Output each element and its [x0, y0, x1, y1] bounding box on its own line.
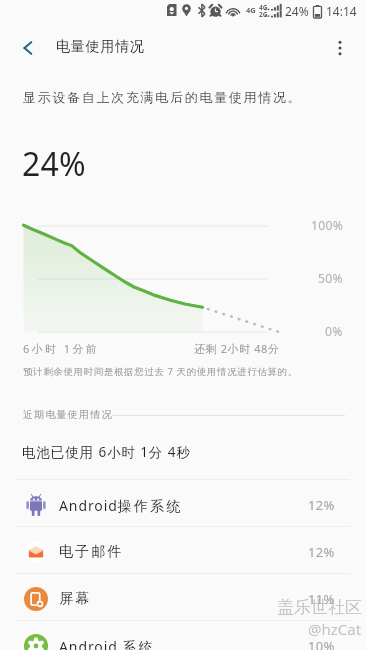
staticText: 11% [308, 590, 335, 608]
staticText: 100% [311, 217, 344, 234]
staticText: 4G [259, 3, 268, 12]
staticText: 0% [325, 323, 343, 340]
staticText: 电子邮件 [59, 543, 124, 561]
staticText: 屏幕 [59, 590, 92, 608]
staticText: 50% [318, 270, 343, 287]
staticText: 24% [285, 3, 309, 19]
button[interactable]: More options [320, 28, 360, 68]
staticText: 4G [246, 5, 256, 15]
button[interactable]: Android操作系统 [0, 480, 366, 526]
staticText: 电量使用情况 [56, 38, 145, 56]
staticText: 预计剩余使用时间是根据您过去 7 天的使用情况进行估算的。 [23, 365, 298, 378]
staticText: 电池已使用 6小时 1分 4秒 [22, 443, 191, 461]
staticText: Android 系统 [59, 637, 155, 650]
button[interactable]: 屏幕 [0, 574, 366, 620]
button[interactable]: Back [8, 28, 48, 68]
staticText: 近期电量使用情况 [23, 408, 113, 421]
staticText: 12% [308, 496, 335, 514]
staticText: 显示设备自上次充满电后的电量使用情况。 [23, 89, 303, 105]
staticText: 10% [308, 637, 335, 650]
staticText: 14:14 [326, 3, 357, 19]
staticText: 还剩 2小时 48分 [194, 341, 280, 356]
staticText: @hzCat [308, 619, 362, 639]
staticText: Android操作系统 [59, 496, 183, 515]
staticText: 2G [259, 10, 268, 19]
button[interactable]: Android 系统 [0, 621, 366, 650]
staticText: 24% [22, 142, 86, 186]
button[interactable]: 电子邮件 [0, 527, 366, 573]
staticText: 12% [308, 543, 335, 561]
staticText: 盖乐世社区 [277, 597, 362, 618]
staticText: 6小时 1分前 [23, 341, 100, 356]
